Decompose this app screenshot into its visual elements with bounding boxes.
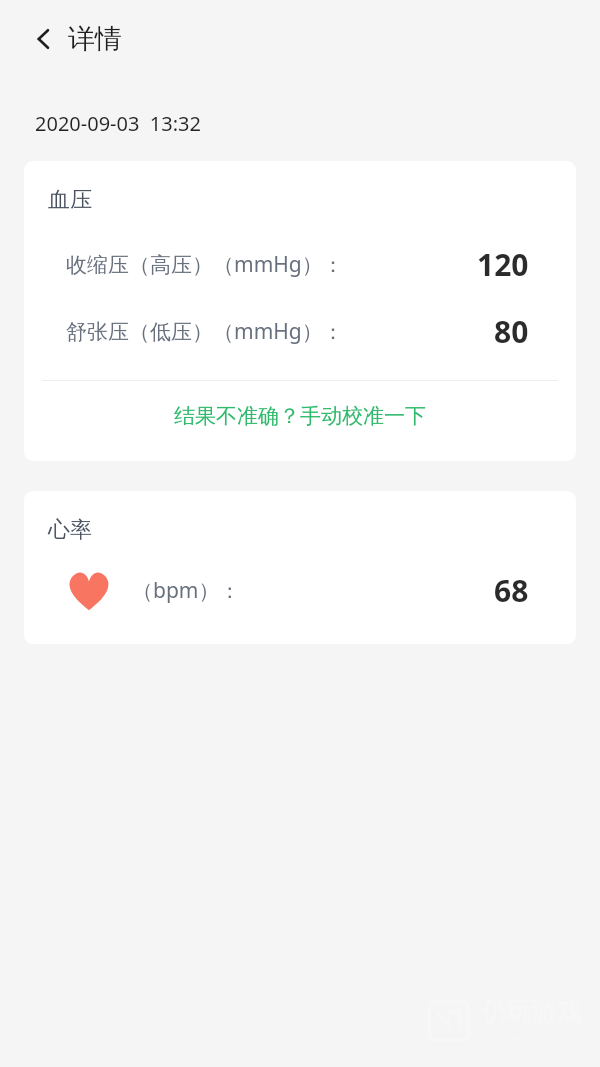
staticText: （bpm）： (132, 576, 241, 605)
staticText: 68 (494, 570, 529, 611)
staticText: 结果不准确？手动校准一下 (174, 403, 426, 429)
staticText: 收缩压（高压）（mmHg）： (66, 250, 344, 279)
staticText: 80 (494, 311, 529, 352)
button[interactable]: 结果不准确？手动校准一下 (24, 381, 576, 451)
staticText: 心率 (48, 516, 92, 544)
staticText: 血压 (48, 186, 92, 214)
button[interactable]: Back (22, 17, 66, 61)
staticText: 舒张压（低压）（mmHg）： (66, 317, 344, 346)
staticText: 120 (477, 244, 529, 285)
staticText: 2020-09-03 13:32 (35, 110, 201, 137)
staticText: 详情 (68, 22, 122, 56)
